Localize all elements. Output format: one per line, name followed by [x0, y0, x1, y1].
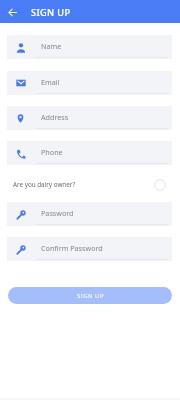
staticText: Confirm Password	[41, 243, 103, 253]
button[interactable]: Back	[4, 4, 20, 20]
staticText: SIGN UP	[77, 292, 104, 300]
button[interactable]: SIGN UP	[8, 287, 172, 304]
button[interactable]: Password	[7, 202, 172, 226]
staticText: Address	[41, 112, 69, 122]
button[interactable]: Name	[7, 35, 172, 59]
button[interactable]: Phone	[7, 141, 172, 165]
button[interactable]: Email	[7, 71, 172, 95]
staticText: SIGN UP	[31, 6, 71, 19]
staticText: Name	[41, 41, 62, 51]
button[interactable]: Address	[7, 106, 172, 130]
button[interactable]: Are you dairy owner?	[0, 173, 180, 195]
staticText: Email	[41, 77, 60, 87]
staticText: Password	[41, 208, 74, 218]
staticText: Are you dairy owner?	[13, 180, 76, 189]
button[interactable]: Confirm Password	[7, 237, 172, 261]
staticText: Phone	[41, 147, 63, 157]
